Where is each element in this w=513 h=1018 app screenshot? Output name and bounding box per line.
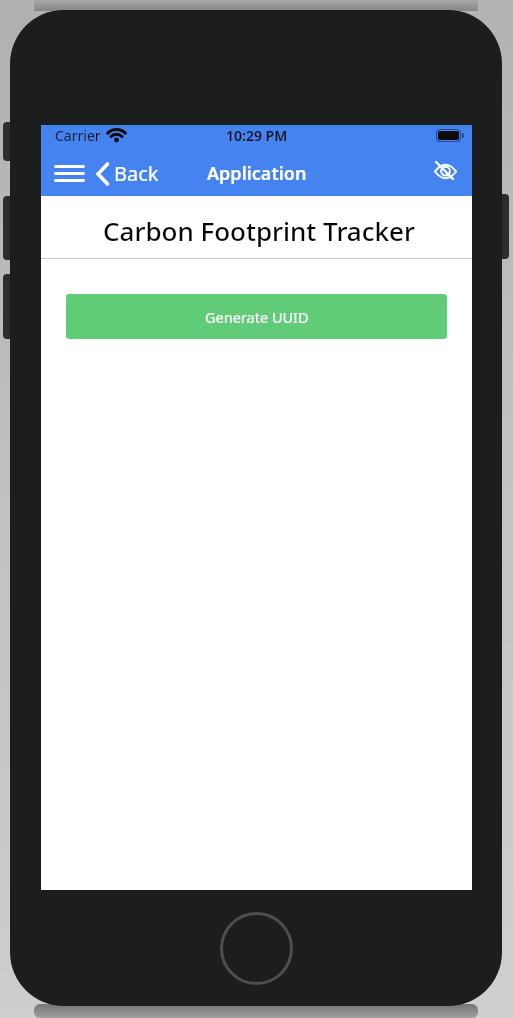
- button[interactable]: [220, 912, 293, 985]
- staticText: Carrier: [55, 126, 101, 145]
- staticText: Generate UUID: [205, 307, 309, 327]
- button[interactable]: Generate UUID: [66, 294, 447, 339]
- staticText: Back: [114, 160, 159, 187]
- button[interactable]: Back: [96, 160, 159, 187]
- staticText: Carbon Footprint Tracker: [103, 213, 415, 248]
- staticText: Application: [207, 161, 307, 186]
- button[interactable]: [433, 159, 457, 183]
- button[interactable]: [55, 155, 96, 191]
- staticText: 10:29 PM: [226, 126, 288, 145]
